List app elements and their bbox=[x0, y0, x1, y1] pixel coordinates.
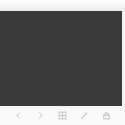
button[interactable]: Back bbox=[8, 106, 29, 125]
button[interactable]: Forward bbox=[29, 106, 51, 125]
button[interactable]: Lock bbox=[95, 106, 117, 125]
button[interactable]: Edit bbox=[73, 106, 95, 125]
button[interactable]: Grid view bbox=[51, 106, 73, 125]
